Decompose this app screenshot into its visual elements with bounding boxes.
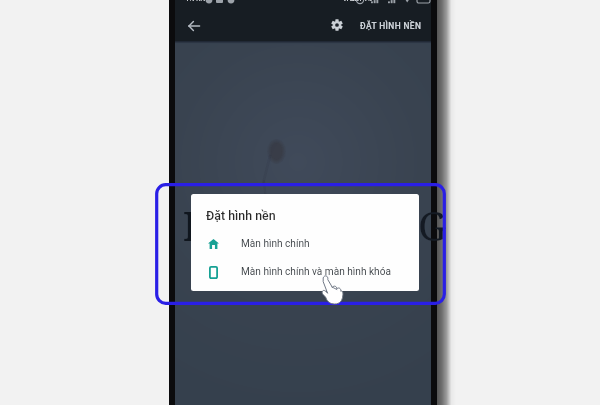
staticText: 15:55: [185, 0, 205, 1]
staticText: 0,4KB/s: [344, 0, 372, 1]
staticText: Màn hình chính và màn hình khóa: [241, 266, 391, 278]
button[interactable]: Màn hình chính: [191, 230, 419, 258]
staticText: I: [183, 198, 200, 252]
staticText: Đặt hình nền: [206, 208, 276, 223]
staticText: G: [418, 198, 447, 252]
button[interactable]: ĐẶT HÌNH NỀN: [349, 16, 431, 36]
staticText: ĐẶT HÌNH NỀN: [360, 21, 422, 31]
button[interactable]: Settings: [325, 13, 349, 37]
button[interactable]: Back: [182, 14, 206, 38]
staticText: Màn hình chính: [241, 238, 310, 250]
button[interactable]: Màn hình chính và màn hình khóa: [191, 258, 419, 286]
